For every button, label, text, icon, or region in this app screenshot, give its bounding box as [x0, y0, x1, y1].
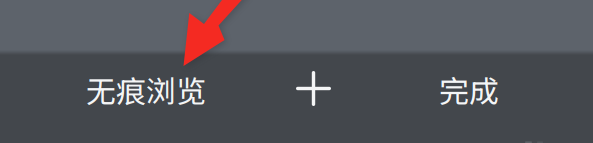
- button[interactable]: 完成: [421, 55, 517, 124]
- button[interactable]: 无痕浏览: [68, 55, 224, 124]
- staticText: 无痕浏览: [86, 68, 206, 111]
- button[interactable]: New Tab: [287, 55, 339, 124]
- staticText: 完成: [439, 68, 499, 111]
